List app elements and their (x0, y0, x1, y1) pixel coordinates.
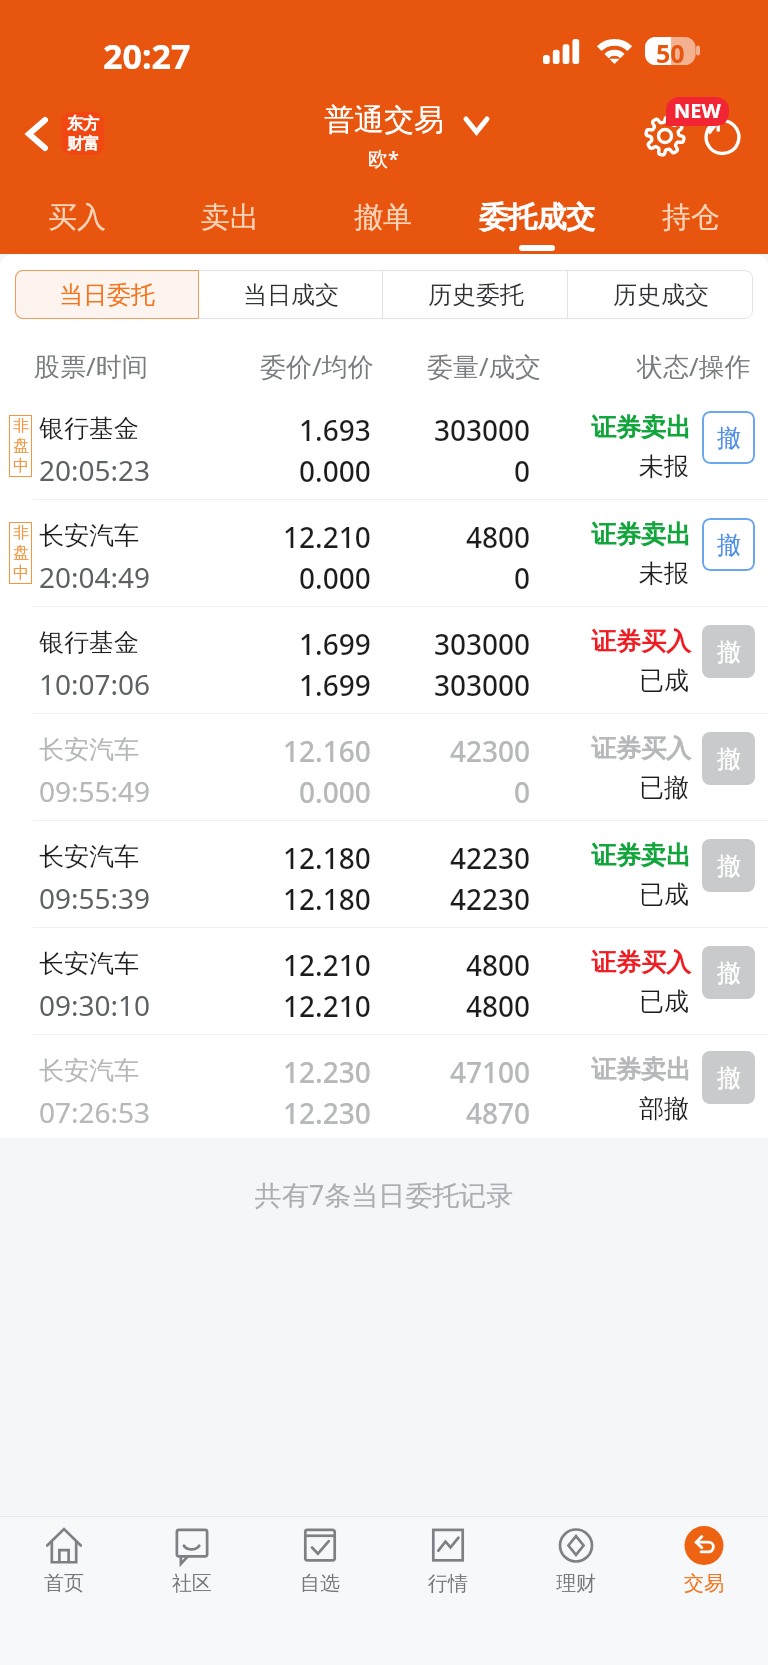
staticText: 12.180 (283, 839, 371, 877)
staticText: 未报 (639, 558, 689, 589)
button[interactable]: 非 (0, 393, 768, 499)
button[interactable]: 撤 (702, 625, 755, 678)
staticText: 12.230 (283, 1094, 371, 1132)
staticText: 07:26:53 (39, 1093, 151, 1131)
staticText: 1.699 (299, 625, 371, 663)
staticText: 303000 (434, 666, 531, 704)
staticText: 4870 (466, 1094, 531, 1132)
staticText: 20:27 (103, 33, 191, 79)
staticText: 中 (13, 456, 29, 476)
staticText: 4800 (466, 518, 531, 556)
staticText: 撤 (717, 423, 741, 453)
button[interactable]: 长安汽车 (0, 1035, 768, 1138)
button[interactable]: 自选 (256, 1517, 384, 1665)
staticText: 长安汽车 (39, 520, 139, 551)
button[interactable]: 行情 (384, 1517, 512, 1665)
staticText: 12.210 (283, 946, 371, 984)
staticText: 12.230 (283, 1053, 371, 1091)
staticText: 社区 (172, 1571, 212, 1596)
staticText: 普通交易 (324, 101, 444, 139)
button[interactable]: 撤 (702, 1051, 755, 1104)
staticText: 证券卖出 (591, 840, 691, 871)
button[interactable]: 银行基金 (0, 607, 768, 713)
staticText: 已撤 (639, 772, 689, 803)
button[interactable]: 撤 (702, 732, 755, 785)
button[interactable]: 普通交易 (264, 101, 504, 171)
button[interactable]: 社区 (128, 1517, 256, 1665)
staticText: 交易 (684, 1571, 724, 1596)
staticText: 42230 (450, 880, 531, 918)
staticText: 已成 (639, 879, 689, 910)
staticText: 12.210 (283, 518, 371, 556)
button[interactable]: 当日委托 (15, 270, 199, 319)
staticText: 0.000 (299, 559, 371, 597)
staticText: 0 (514, 452, 531, 490)
staticText: 证券买入 (591, 947, 691, 978)
staticText: 长安汽车 (39, 948, 139, 979)
button[interactable]: 持仓 (614, 185, 768, 254)
staticText: 长安汽车 (39, 1055, 139, 1086)
button[interactable]: 买入 (0, 185, 153, 254)
staticText: 长安汽车 (39, 734, 139, 765)
staticText: 撤 (717, 851, 741, 881)
staticText: 未报 (639, 451, 689, 482)
staticText: 09:55:39 (39, 879, 151, 917)
staticText: 0 (514, 559, 531, 597)
button[interactable]: 撤 (702, 518, 755, 571)
button[interactable]: 长安汽车 (0, 928, 768, 1034)
staticText: 非 (13, 416, 29, 436)
button[interactable]: 长安汽车 (0, 714, 768, 820)
staticText: 20:04:49 (39, 558, 151, 596)
staticText: 委托成交 (479, 199, 595, 236)
staticText: 47100 (450, 1053, 531, 1091)
staticText: 撤 (717, 744, 741, 774)
staticText: 证券买入 (591, 733, 691, 764)
button[interactable]: 撤 (702, 946, 755, 999)
button[interactable]: 撤单 (306, 185, 460, 254)
staticText: 10:07:06 (39, 665, 151, 703)
staticText: 50 (656, 36, 685, 64)
staticText: 1.693 (299, 411, 371, 449)
staticText: 09:30:10 (39, 986, 151, 1024)
button[interactable]: 撤 (702, 411, 755, 464)
staticText: 委量/成交 (427, 348, 541, 384)
staticText: 撤 (717, 637, 741, 667)
button[interactable]: 卖出 (153, 185, 306, 254)
button[interactable]: 撤 (702, 839, 755, 892)
staticText: 股票/时间 (34, 348, 148, 384)
staticText: 1.699 (299, 666, 371, 704)
staticText: 银行基金 (39, 413, 139, 444)
button[interactable]: Settings (637, 108, 693, 164)
staticText: 0 (514, 773, 531, 811)
button[interactable]: 长安汽车 (0, 821, 768, 927)
button[interactable]: Back (14, 106, 116, 161)
button[interactable]: 非 (0, 500, 768, 606)
staticText: 盘 (13, 436, 29, 456)
button[interactable]: 当日成交 (199, 270, 383, 319)
staticText: 20:05:23 (39, 451, 151, 489)
staticText: 卖出 (201, 199, 259, 236)
staticText: 撤单 (354, 199, 412, 236)
staticText: 证券卖出 (591, 412, 691, 443)
staticText: 09:55:49 (39, 772, 151, 810)
staticText: 当日成交 (243, 280, 339, 310)
button[interactable]: Refresh (694, 107, 750, 163)
button[interactable]: 历史委托 (383, 270, 568, 319)
staticText: 首页 (44, 1571, 84, 1596)
staticText: 持仓 (662, 199, 720, 236)
staticText: 东方 (67, 114, 99, 134)
staticText: 非 (13, 523, 29, 543)
staticText: 303000 (434, 411, 531, 449)
button[interactable]: 历史成交 (568, 270, 753, 319)
staticText: 行情 (428, 1571, 468, 1596)
button[interactable]: 交易 (640, 1517, 768, 1665)
staticText: 4800 (466, 987, 531, 1025)
staticText: 状态/操作 (637, 348, 751, 384)
staticText: 共有7条当日委托记录 (0, 1176, 768, 1213)
staticText: 12.210 (283, 987, 371, 1025)
button[interactable]: 理财 (512, 1517, 640, 1665)
staticText: 证券买入 (591, 626, 691, 657)
button[interactable]: 委托成交 (460, 185, 614, 254)
staticText: 部撤 (639, 1093, 689, 1124)
button[interactable]: 首页 (0, 1517, 128, 1665)
